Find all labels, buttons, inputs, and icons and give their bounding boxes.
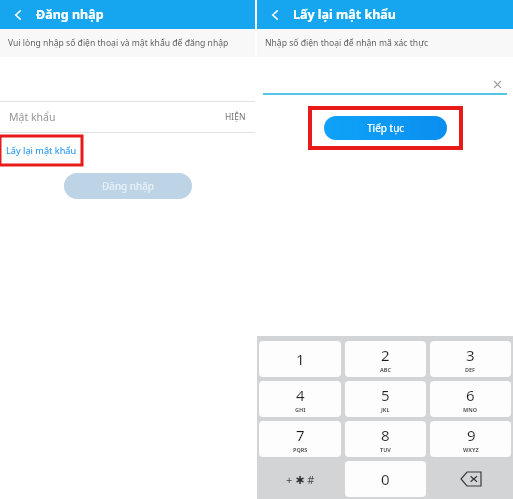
button[interactable]: 3: [430, 341, 511, 377]
staticText: DEF: [465, 366, 476, 373]
staticText: TUV: [380, 446, 391, 453]
staticText: 0: [381, 469, 390, 489]
button[interactable]: 9: [430, 421, 511, 457]
staticText: 5: [381, 385, 390, 405]
button[interactable]: 5: [345, 381, 426, 417]
staticText: JKL: [381, 406, 390, 413]
staticText: 2: [381, 345, 390, 365]
button[interactable]: 4: [259, 381, 341, 417]
button[interactable]: Backspace: [430, 461, 511, 497]
staticText: HIỆN: [225, 111, 246, 123]
staticText: 6: [466, 385, 475, 405]
staticText: MNO: [463, 406, 478, 413]
staticText: 4: [296, 385, 305, 405]
staticText: Lấy lại mật khẩu: [6, 144, 77, 157]
button[interactable]: Đăng nhập: [64, 173, 192, 199]
button[interactable]: Tiếp tục: [324, 116, 447, 140]
staticText: Vui lòng nhập số điện thoại và mật khẩu …: [8, 37, 229, 49]
staticText: 3: [466, 345, 475, 365]
staticText: WXYZ: [463, 446, 479, 453]
staticText: 7: [296, 425, 305, 445]
staticText: 9: [467, 425, 476, 445]
button[interactable]: Back: [266, 6, 284, 24]
button[interactable]: Mật khẩu: [0, 102, 255, 132]
staticText: Tiếp tục: [367, 121, 405, 135]
button[interactable]: Lấy lại mật khẩu: [0, 136, 82, 165]
button[interactable]: 6: [430, 381, 511, 417]
staticText: Đăng nhập: [102, 179, 154, 193]
button[interactable]: Back: [9, 6, 27, 24]
button[interactable]: 7: [259, 421, 341, 457]
button[interactable]: Clear: [490, 77, 504, 91]
button[interactable]: 1: [259, 341, 341, 377]
staticText: 1: [296, 349, 305, 369]
button[interactable]: 2: [345, 341, 426, 377]
staticText: Lấy lại mật khẩu: [293, 6, 396, 23]
button[interactable]: 8: [345, 421, 426, 457]
staticText: Đăng nhập: [36, 6, 104, 23]
button[interactable]: 0: [345, 461, 426, 497]
staticText: Mật khẩu: [9, 110, 56, 124]
staticText: Nhập số điện thoại để nhận mã xác thực: [265, 37, 429, 49]
staticText: 8: [381, 425, 390, 445]
staticText: + ✱ #: [286, 472, 315, 487]
staticText: PQRS: [293, 446, 308, 453]
staticText: GHI: [295, 406, 306, 413]
staticText: ABC: [380, 366, 391, 373]
button[interactable]: Symbols: [259, 461, 341, 497]
